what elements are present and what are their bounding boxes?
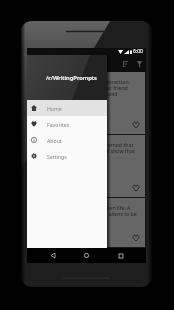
button[interactable]: Favorite [132,184,140,192]
staticText: When humans die, you are informed that E… [33,141,139,160]
staticText: /r/WritingPrompts [46,74,97,82]
button[interactable]: Back [45,248,60,263]
staticText: submitted 4 hours ago [33,101,76,106]
button[interactable]: Favorite [132,234,140,242]
button[interactable]: About [27,132,107,148]
staticText: /r/WritingPrompts [37,60,90,68]
button[interactable]: Settings [27,148,107,164]
button[interactable]: Imagine a conversation and interaction w… [27,72,145,134]
staticText: Home [47,105,62,112]
button[interactable]: Recent apps [113,248,128,263]
button[interactable]: Sort [118,57,132,71]
staticText: Imagine a conversation and interaction w… [33,78,139,97]
button[interactable]: We finally make contact with alien life.… [27,198,145,247]
button[interactable]: Filter [132,57,146,71]
button[interactable]: Home [79,248,94,263]
button[interactable]: Favorites [27,116,107,132]
staticText: We finally make contact with alien life.… [33,204,139,223]
staticText: 6:00 [133,48,143,55]
button[interactable]: When humans die, you are informed that E… [27,135,145,197]
staticText: About [47,137,62,144]
staticText: Favorites [47,121,70,128]
staticText: Settings [47,153,67,160]
button[interactable]: Home [27,100,107,116]
button[interactable]: Favorite [132,121,140,129]
